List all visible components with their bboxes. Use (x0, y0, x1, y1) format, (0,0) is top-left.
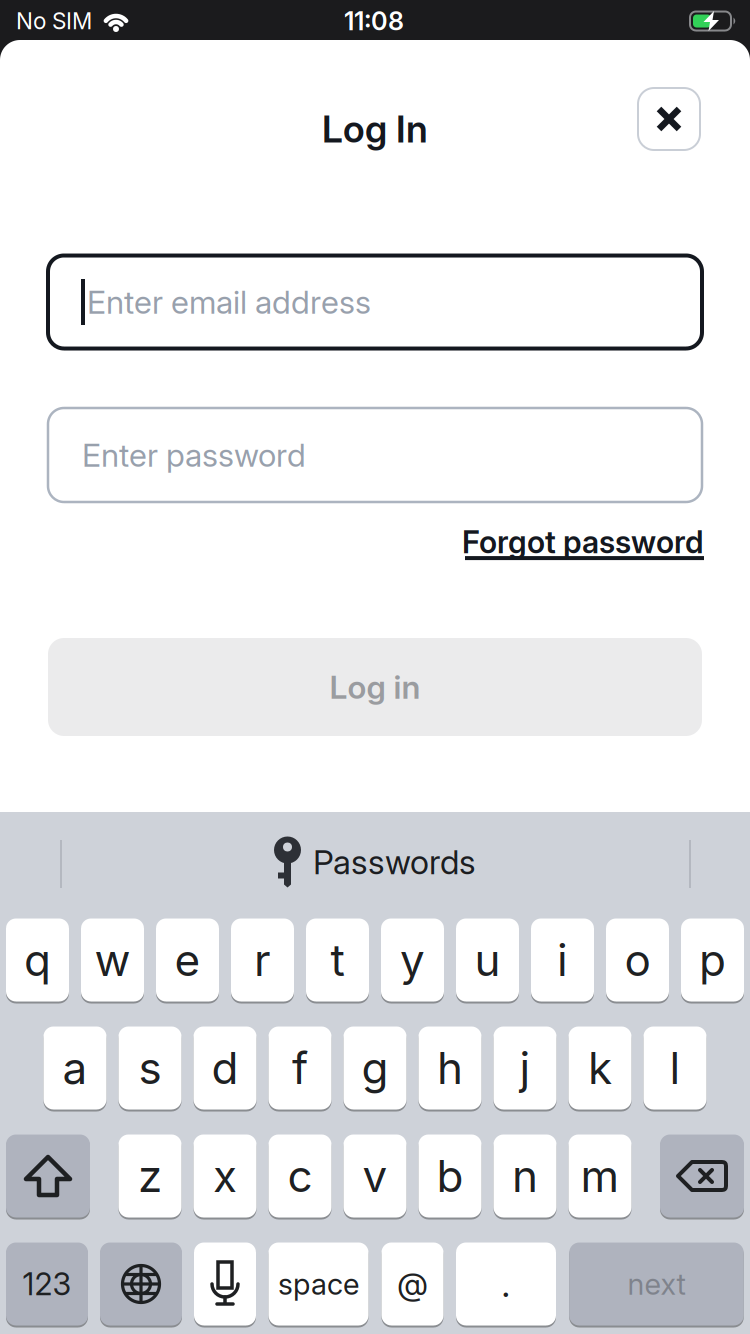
button[interactable]: Log in (48, 638, 702, 736)
staticText: x (213, 1150, 237, 1202)
button[interactable]: next (569, 1241, 744, 1326)
button[interactable]: u (456, 917, 519, 1002)
button[interactable]: y (381, 917, 444, 1002)
staticText: u (474, 934, 500, 986)
staticText: r (254, 934, 271, 986)
staticText: k (588, 1042, 612, 1094)
button[interactable]: space (268, 1241, 368, 1326)
button[interactable] (194, 1241, 256, 1326)
button[interactable]: n (493, 1133, 556, 1218)
staticText: g (361, 1042, 388, 1094)
staticText: l (669, 1042, 680, 1094)
staticText: space (278, 1267, 359, 1301)
button[interactable]: x (193, 1133, 256, 1218)
staticText: 123 (22, 1266, 71, 1302)
staticText: q (24, 934, 51, 986)
staticText: @ (397, 1265, 428, 1303)
staticText: y (400, 934, 425, 986)
staticText: t (330, 934, 344, 986)
staticText: No SIM (16, 8, 92, 34)
staticText: . (501, 1263, 510, 1305)
button[interactable]: g (343, 1025, 406, 1110)
staticText: b (436, 1150, 463, 1202)
button[interactable]: c (268, 1133, 331, 1218)
staticText: d (211, 1042, 238, 1094)
button[interactable]: m (568, 1133, 631, 1218)
staticText: s (138, 1042, 161, 1094)
staticText: Forgot password (462, 524, 704, 560)
staticText: v (362, 1150, 387, 1202)
button[interactable]: . (456, 1241, 556, 1326)
button[interactable]: Enter password (48, 408, 702, 502)
staticText: Enter email address (87, 283, 371, 321)
button[interactable]: s (118, 1025, 181, 1110)
button[interactable]: h (418, 1025, 481, 1110)
staticText: h (437, 1042, 463, 1094)
staticText: m (580, 1150, 619, 1202)
staticText: n (512, 1150, 538, 1202)
staticText: a (62, 1042, 87, 1094)
button[interactable]: e (156, 917, 219, 1002)
button[interactable]: o (606, 917, 669, 1002)
button[interactable]: Forgot password (462, 524, 704, 560)
staticText: c (287, 1150, 312, 1202)
button[interactable]: t (306, 917, 369, 1002)
button[interactable]: Enter email address (48, 255, 702, 348)
staticText: e (174, 934, 200, 986)
staticText: w (94, 934, 130, 986)
button[interactable]: w (81, 917, 144, 1002)
staticText: Passwords (313, 842, 476, 882)
button[interactable]: z (118, 1133, 181, 1218)
button[interactable] (100, 1241, 182, 1326)
button[interactable]: Passwords (274, 836, 476, 887)
staticText: z (138, 1150, 162, 1202)
button[interactable]: 123 (6, 1241, 88, 1326)
button[interactable]: a (43, 1025, 106, 1110)
button[interactable]: k (568, 1025, 631, 1110)
button[interactable]: f (268, 1025, 331, 1110)
staticText: next (627, 1267, 685, 1301)
staticText: f (292, 1042, 308, 1094)
staticText: p (699, 934, 726, 986)
button[interactable]: q (6, 917, 69, 1002)
staticText: j (519, 1042, 530, 1094)
button[interactable]: p (681, 917, 744, 1002)
staticText: o (624, 934, 650, 986)
button[interactable]: @ (381, 1241, 443, 1326)
staticText: Log in (329, 668, 420, 706)
button[interactable]: b (418, 1133, 481, 1218)
staticText: i (557, 934, 568, 986)
staticText: Log In (322, 107, 428, 151)
button[interactable]: i (531, 917, 594, 1002)
button[interactable]: j (493, 1025, 556, 1110)
button[interactable]: d (193, 1025, 256, 1110)
staticText: Enter password (82, 436, 306, 474)
button[interactable] (6, 1133, 90, 1218)
button[interactable]: l (643, 1025, 706, 1110)
button[interactable] (638, 88, 700, 150)
staticText: 11:08 (344, 6, 404, 36)
button[interactable]: r (231, 917, 294, 1002)
button[interactable] (660, 1133, 744, 1218)
button[interactable]: v (343, 1133, 406, 1218)
